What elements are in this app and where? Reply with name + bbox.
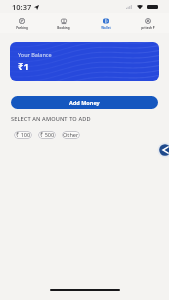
button[interactable]: Booking xyxy=(43,13,84,33)
staticText: SELECT AN AMOUNT TO ADD xyxy=(11,115,91,123)
staticText: ₹ 100 xyxy=(16,131,31,139)
button[interactable]: Wallet xyxy=(85,13,126,33)
staticText: 10:37 xyxy=(12,2,32,12)
staticText: Parking xyxy=(16,26,28,30)
button[interactable]: ₹ 100 xyxy=(14,131,32,139)
button[interactable]: Add Money xyxy=(11,96,158,109)
button[interactable]: Other xyxy=(62,131,80,139)
button[interactable]: Parking xyxy=(1,13,42,33)
staticText: ₹ 500 xyxy=(40,131,55,139)
button[interactable]: Back xyxy=(157,142,169,158)
staticText: Add Money xyxy=(69,99,100,106)
staticText: Booking xyxy=(57,26,70,30)
button[interactable]: ₹ 500 xyxy=(38,131,56,139)
staticText: Wallet xyxy=(101,26,111,30)
staticText: ₹1 xyxy=(18,60,29,73)
button[interactable]: pritesh P xyxy=(127,13,168,33)
staticText: Your Balance xyxy=(18,51,52,58)
staticText: pritesh P xyxy=(141,26,155,30)
button[interactable]: Your Balance xyxy=(10,42,159,81)
staticText: Other xyxy=(63,131,79,139)
